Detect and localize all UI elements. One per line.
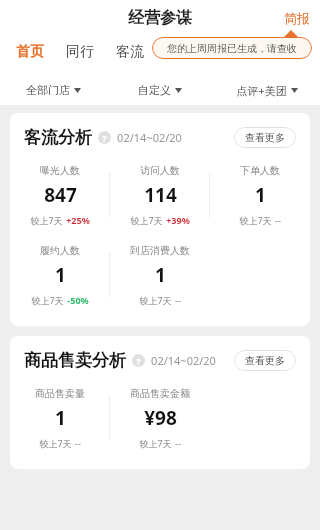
staticText: 曝光人数 [40,164,80,177]
staticText: 评价 [216,43,244,61]
staticText: 客流 [116,43,144,61]
button[interactable]: 下单人数 [239,164,281,226]
staticText: 访问人数 [140,164,180,177]
staticText: 您的上周周报已生成，请查收 [167,42,297,55]
staticText: 全部门店 [26,83,70,97]
staticText: 较上7天 [39,437,72,449]
button[interactable]: 点评+美团 [213,79,320,102]
staticText: 到店消费人数 [130,244,190,257]
staticText: 02/14~02/20 [117,130,182,145]
staticText: 经营参谋 [128,8,192,28]
staticText: 较上7天 [31,294,64,306]
button[interactable]: 查看更多 [234,350,296,371]
staticText: ? [136,355,141,367]
staticText: 首页 [16,43,44,61]
staticText: 商品售卖金额 [130,387,190,400]
staticText: -- [175,294,181,306]
button[interactable]: 履约人数 [31,244,89,306]
button[interactable]: 商品售卖量 [35,387,85,449]
staticText: 847 [44,182,77,208]
button[interactable]: 首页 [14,41,46,63]
staticText: 较上7天 [139,294,172,306]
button[interactable]: 评价 [214,41,246,63]
button[interactable]: 查看更多 [234,127,296,148]
staticText: 1 [155,262,166,288]
staticText: 查看更多 [245,354,285,367]
button[interactable]: 商品 [164,41,196,63]
button[interactable]: 同行 [64,41,96,63]
button[interactable]: 简报 [280,8,314,28]
staticText: 较上7天 [130,214,163,226]
button[interactable]: 帮助说明 [132,354,145,367]
button[interactable]: 全部门店 [0,79,106,101]
button[interactable]: 客流 [114,41,146,63]
staticText: +39% [166,214,190,226]
staticText: -- [175,437,181,449]
staticText: 1 [255,182,266,208]
button[interactable]: 曝光人数 [30,164,90,226]
staticText: 履约人数 [40,244,80,257]
button[interactable]: 商品售卖金额 [130,387,190,449]
staticText: -50% [67,294,89,306]
staticText: 1 [55,405,66,431]
staticText: 114 [144,182,177,208]
staticText: 1 [55,262,66,288]
button[interactable]: 访问人数 [130,164,190,226]
staticText: 简报 [284,10,310,26]
staticText: -- [75,437,81,449]
staticText: 商品售卖分析 [24,350,126,371]
staticText: 02/14~02/20 [151,353,216,368]
staticText: 较上7天 [30,214,63,226]
staticText: 点评+美团 [236,83,287,98]
staticText: ? [102,132,107,144]
button[interactable]: 自定义 [106,79,213,101]
staticText: 较上7天 [139,437,172,449]
button[interactable]: 帮助说明 [98,131,111,144]
button[interactable]: 到店消费人数 [130,244,190,306]
staticText: 商品售卖量 [35,387,85,400]
staticText: 下单人数 [240,164,280,177]
staticText: 自定义 [138,83,171,97]
staticText: ¥98 [144,405,177,431]
staticText: 查看更多 [245,131,285,144]
button[interactable]: 您的上周周报已生成，请查收 [152,37,312,59]
staticText: 较上7天 [239,214,272,226]
staticText: -- [275,214,281,226]
staticText: +25% [66,214,90,226]
staticText: 商品 [166,43,194,61]
staticText: 同行 [66,43,94,61]
staticText: 客流分析 [24,127,92,148]
